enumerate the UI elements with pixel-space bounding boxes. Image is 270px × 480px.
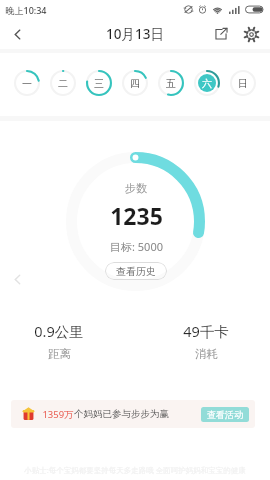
staticText: 小贴士:每个宝妈都要坚持每天多走路哦 全面呵护妈妈和宝宝的健康 bbox=[24, 465, 246, 475]
staticText: 查看历史 bbox=[116, 265, 156, 278]
button[interactable]: Share bbox=[206, 19, 236, 49]
staticText: 二 bbox=[58, 77, 68, 90]
staticText: 查看活动 bbox=[207, 409, 243, 420]
button[interactable]: 三 bbox=[86, 70, 112, 96]
staticText: 日 bbox=[238, 77, 248, 90]
button[interactable]: 六 bbox=[194, 70, 220, 96]
staticText: 五 bbox=[166, 77, 176, 90]
button[interactable]: Back bbox=[0, 19, 34, 49]
button[interactable]: 一 bbox=[14, 70, 40, 96]
staticText: 目标: 5000 bbox=[110, 239, 163, 254]
button[interactable]: Previous day bbox=[8, 270, 26, 288]
button[interactable]: 二 bbox=[50, 70, 76, 96]
button[interactable]: Settings bbox=[236, 19, 266, 49]
staticText: 六 bbox=[202, 77, 212, 90]
button[interactable]: 查看活动 bbox=[201, 407, 249, 422]
staticText: 距离 bbox=[48, 347, 71, 361]
staticText: 0.9公里 bbox=[34, 321, 84, 341]
staticText: 四 bbox=[130, 77, 140, 90]
staticText: 一 bbox=[22, 77, 32, 90]
button[interactable]: 日 bbox=[230, 70, 256, 96]
staticText: 个妈妈已参与步步为赢 bbox=[74, 408, 169, 420]
button[interactable]: 查看历史 bbox=[105, 262, 167, 280]
button[interactable]: 1359万 bbox=[11, 400, 255, 428]
staticText: 消耗 bbox=[195, 347, 218, 361]
staticText: 1235 bbox=[110, 200, 163, 231]
button[interactable]: 五 bbox=[158, 70, 184, 96]
button[interactable]: 四 bbox=[122, 70, 148, 96]
staticText: 1359万 bbox=[42, 408, 74, 421]
staticText: 步数 bbox=[125, 181, 147, 195]
staticText: 晚上10:34 bbox=[5, 4, 47, 16]
staticText: 49千卡 bbox=[183, 321, 229, 341]
staticText: 10月13日 bbox=[106, 25, 164, 43]
staticText: 三 bbox=[94, 77, 104, 90]
